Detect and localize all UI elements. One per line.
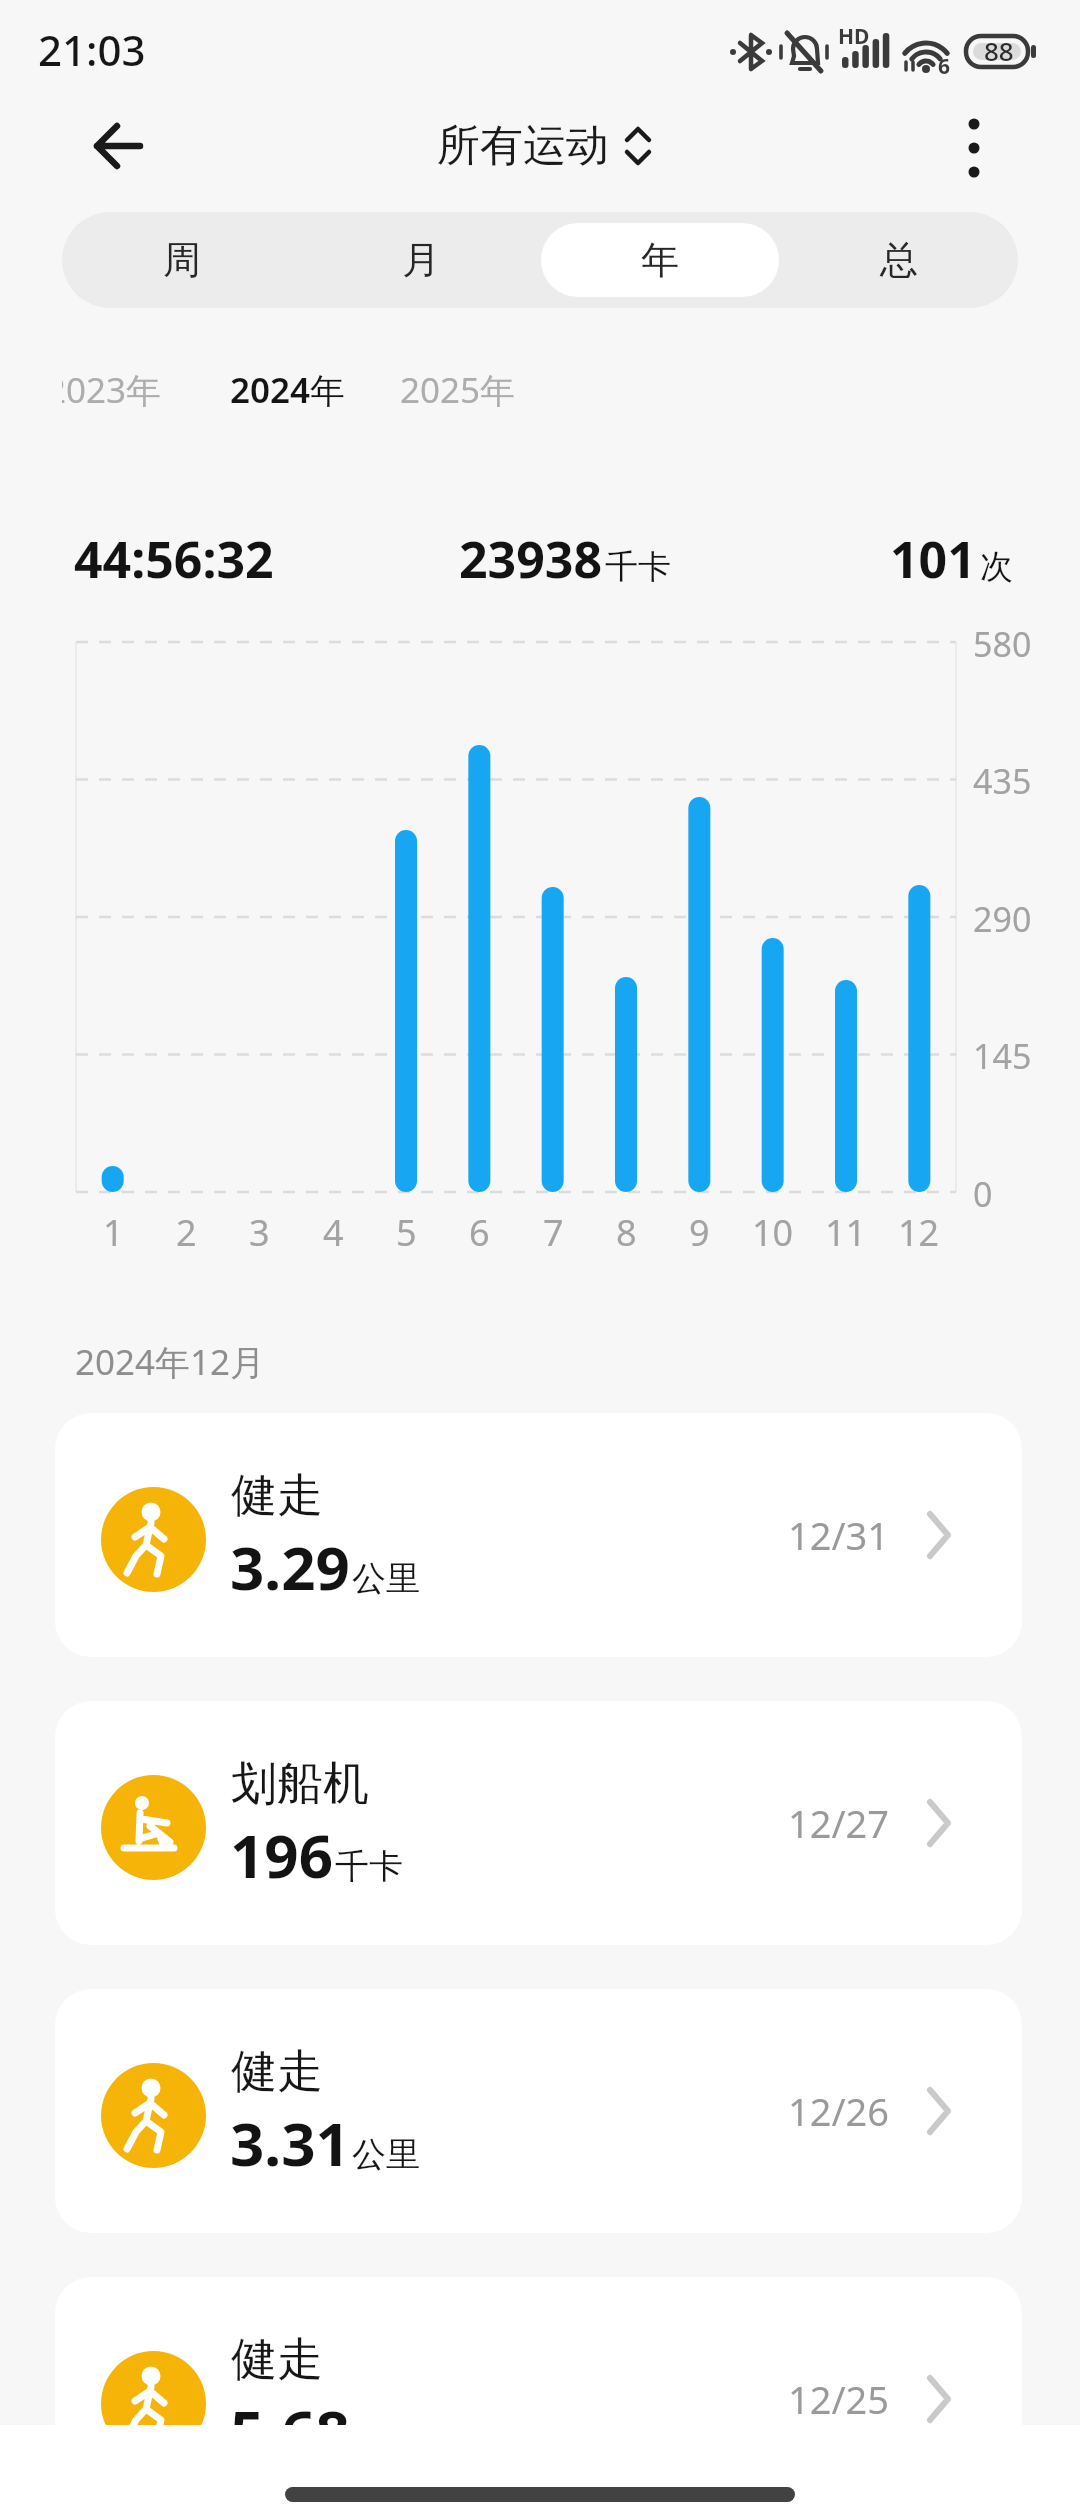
staticText: 8 (616, 1208, 637, 1257)
button[interactable]: 总 (779, 212, 1018, 308)
staticText: 年 (641, 236, 679, 284)
staticText: 2024年12月 (75, 1338, 266, 1386)
staticText: HD (838, 22, 870, 51)
staticText: 3.29 (230, 1526, 350, 1608)
staticText: 周 (163, 236, 201, 284)
staticText: 6 (938, 52, 951, 81)
button[interactable] (960, 116, 988, 180)
button[interactable]: 健走 (55, 2277, 1022, 2520)
staticText: 21:03 (38, 21, 146, 78)
button[interactable]: 健走 (55, 1989, 1022, 2233)
staticText: 所有运动 (437, 119, 609, 173)
button[interactable]: 周 (62, 212, 301, 308)
staticText: 12/27 (788, 1797, 890, 1849)
staticText: 总 (880, 236, 918, 284)
button[interactable]: 月 (301, 212, 540, 308)
staticText: 11 (825, 1208, 867, 1257)
staticText: 290 (973, 896, 1032, 942)
button[interactable]: 所有运动 (437, 119, 651, 173)
staticText: 9 (689, 1208, 710, 1257)
staticText: 2023年 (62, 366, 162, 414)
staticText: 6 (469, 1208, 490, 1257)
staticText: 月 (402, 236, 440, 284)
staticText: 健走 (231, 2043, 323, 2101)
staticText: 23938 (459, 525, 602, 593)
staticText: 公里 (352, 2133, 420, 2176)
staticText: 3 (249, 1208, 270, 1257)
staticText: 0 (973, 1171, 993, 1217)
staticText: 4 (323, 1208, 344, 1257)
staticText: 次 (980, 546, 1013, 588)
staticText: 7 (543, 1208, 564, 1257)
staticText: 44:56:32 (74, 525, 274, 593)
staticText: 145 (973, 1033, 1032, 1079)
staticText: 12/26 (788, 2085, 890, 2137)
staticText: 12/25 (788, 2373, 890, 2425)
staticText: 5 (396, 1208, 417, 1257)
button[interactable]: 健走 (55, 1413, 1022, 1657)
staticText: 88 (984, 33, 1014, 68)
staticText: 2025年 (400, 366, 516, 414)
button[interactable] (90, 118, 146, 174)
staticText: 101 (890, 525, 976, 593)
staticText: 3.31 (230, 2102, 350, 2184)
staticText: 12 (898, 1208, 940, 1257)
staticText: 划船机 (231, 1755, 369, 1813)
staticText: 公里 (352, 1557, 420, 1600)
button[interactable]: 划船机 (55, 1701, 1022, 1945)
staticText: 196 (230, 1814, 333, 1896)
staticText: 健走 (231, 2331, 323, 2389)
staticText: 2 (176, 1208, 197, 1257)
staticText: 12/31 (788, 1509, 890, 1561)
staticText: 健走 (231, 1467, 323, 1525)
staticText: 580 (973, 621, 1032, 667)
button[interactable]: 年 (540, 212, 779, 308)
staticText: 5.68 (230, 2390, 350, 2472)
staticText: 10 (752, 1208, 794, 1257)
staticText: 千卡 (605, 546, 671, 588)
staticText: 1 (103, 1208, 124, 1257)
staticText: 435 (973, 758, 1032, 804)
staticText: 2024年 (230, 366, 346, 414)
staticText: 千卡 (335, 1845, 403, 1888)
